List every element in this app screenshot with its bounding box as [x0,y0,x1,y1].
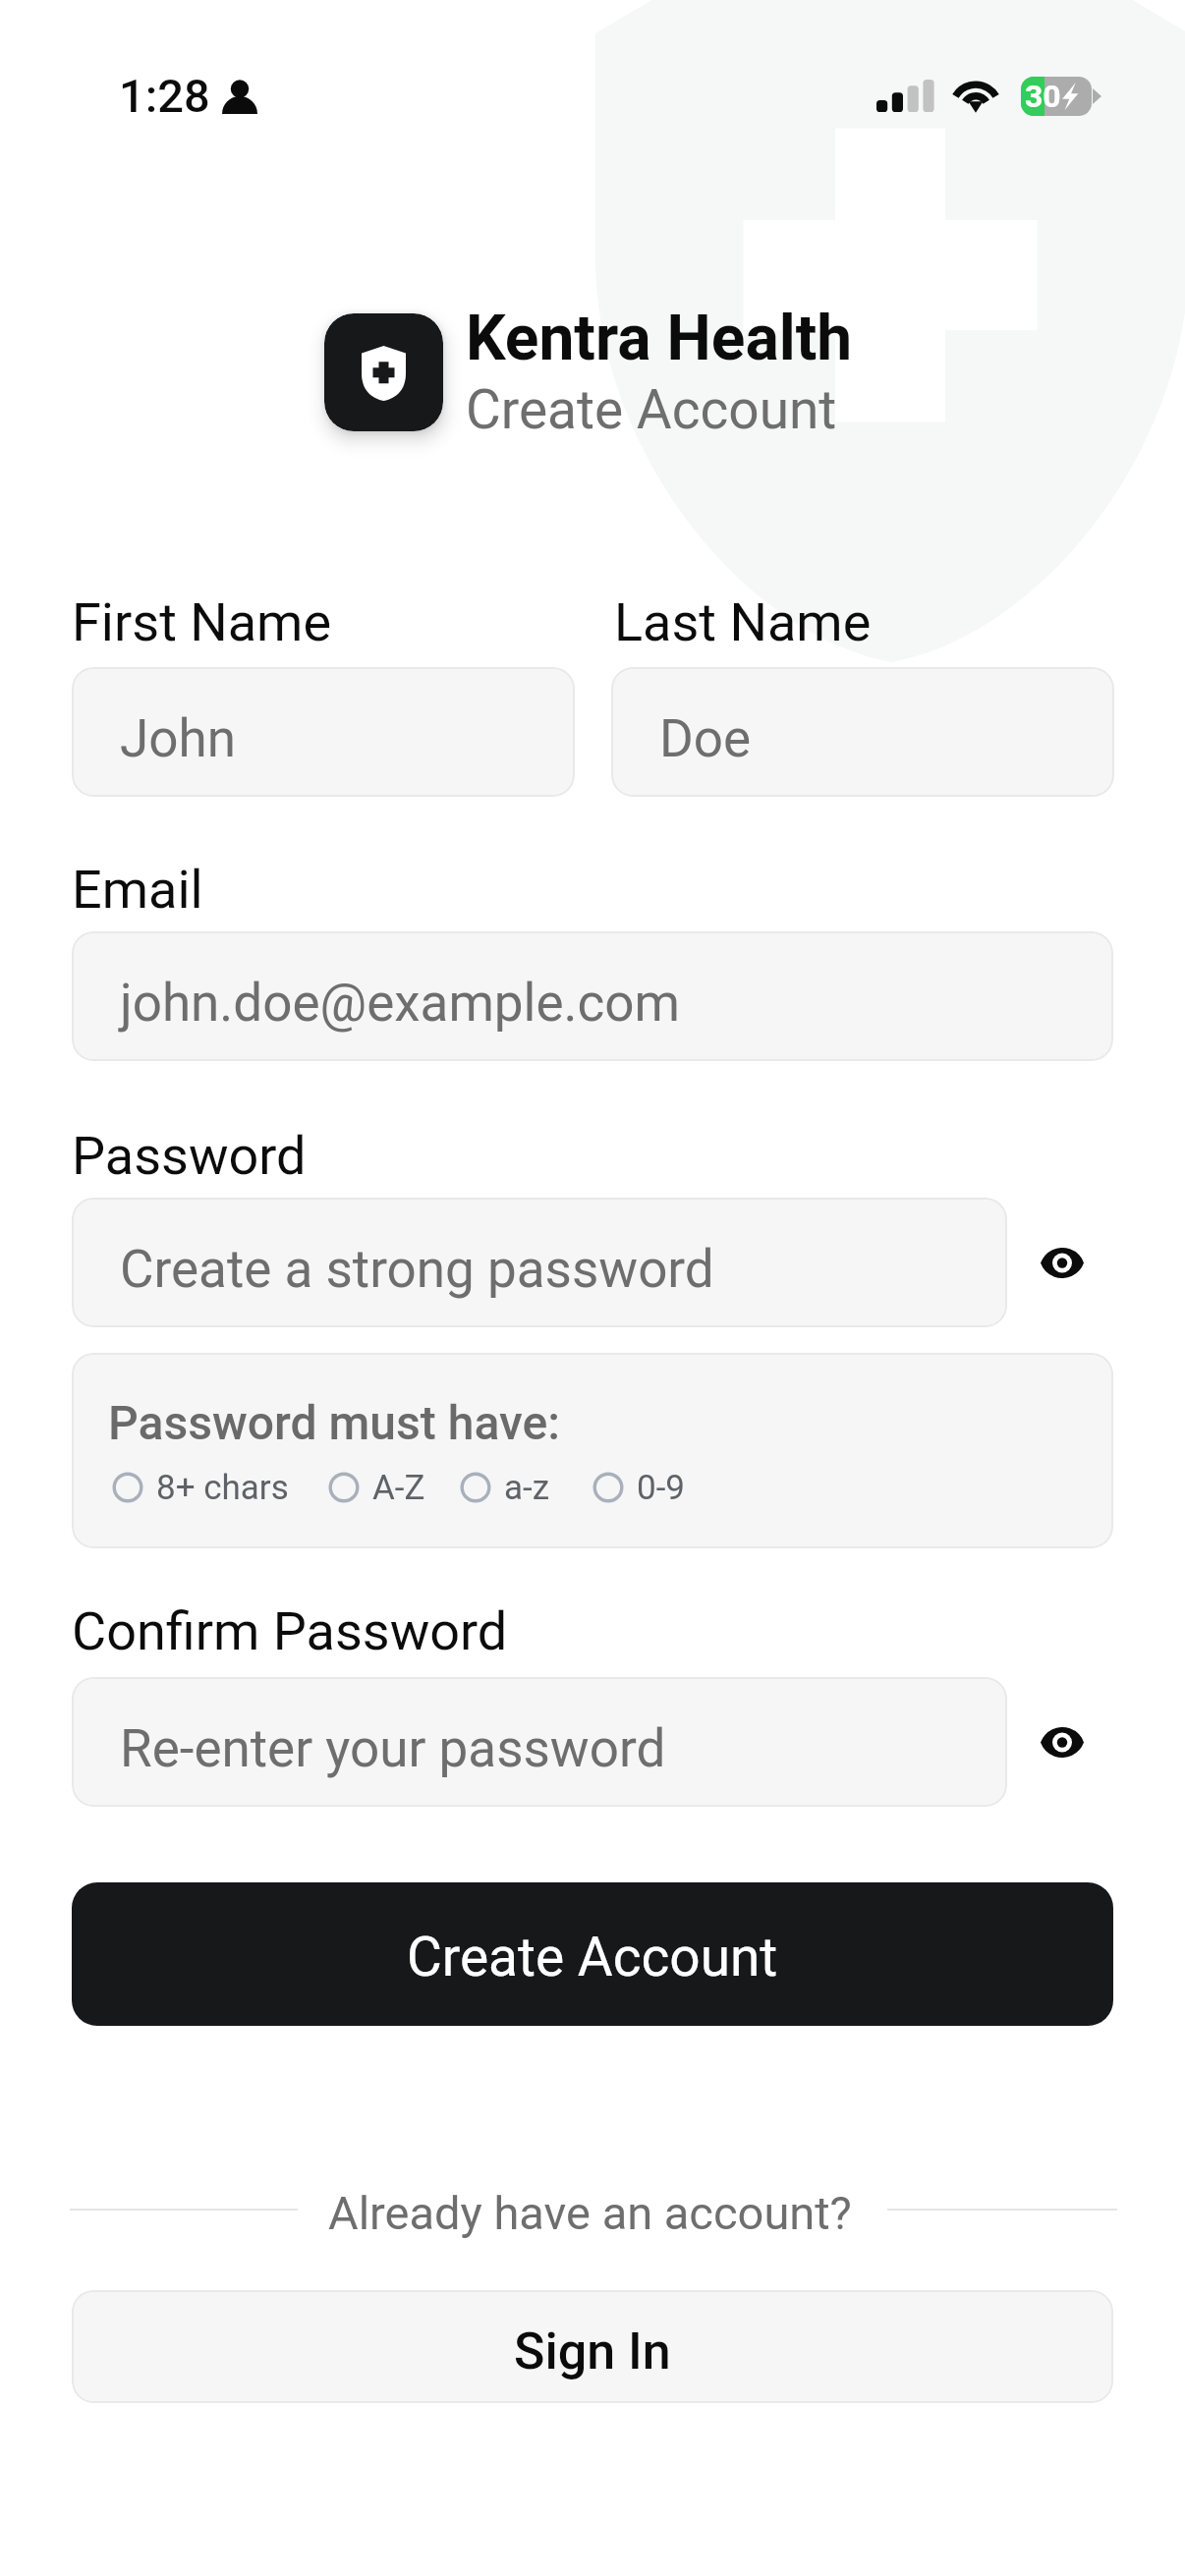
button[interactable]: Create Account [72,1882,1113,2026]
button[interactable]: Re-enter your password [72,1677,1007,1807]
button[interactable]: Show confirm password [1017,1697,1107,1787]
staticText: Last Name [614,591,872,653]
staticText: 30 [1025,78,1061,115]
button[interactable]: Create a strong password [72,1198,1007,1327]
staticText: Password must have: [108,1395,560,1450]
staticText: A-Z [372,1468,425,1508]
button[interactable]: Sign In [72,2290,1113,2403]
button[interactable]: Show password [1017,1217,1107,1308]
button[interactable]: john.doe@example.com [72,931,1113,1061]
staticText: john.doe@example.com [120,973,681,1034]
button[interactable]: John [72,667,575,797]
staticText: a-z [504,1468,550,1508]
staticText: 8+ chars [156,1468,289,1508]
staticText: Kentra Health [466,302,853,375]
staticText: John [120,708,236,769]
button[interactable]: Doe [611,667,1114,797]
staticText: Create Account [466,378,837,441]
staticText: 1:28 [119,69,210,123]
staticText: Confirm Password [72,1600,508,1662]
button[interactable]: Kentra Health logo [324,313,443,431]
staticText: Sign In [514,2322,671,2381]
staticText: First Name [72,591,332,653]
staticText: Doe [659,708,752,769]
staticText: Email [72,859,203,921]
staticText: 0-9 [637,1468,686,1508]
staticText: Create Account [407,1926,778,1988]
staticText: Password [72,1125,307,1187]
staticText: Already have an account? [328,2186,852,2240]
staticText: Re-enter your password [120,1718,666,1779]
staticText: Create a strong password [120,1239,714,1300]
